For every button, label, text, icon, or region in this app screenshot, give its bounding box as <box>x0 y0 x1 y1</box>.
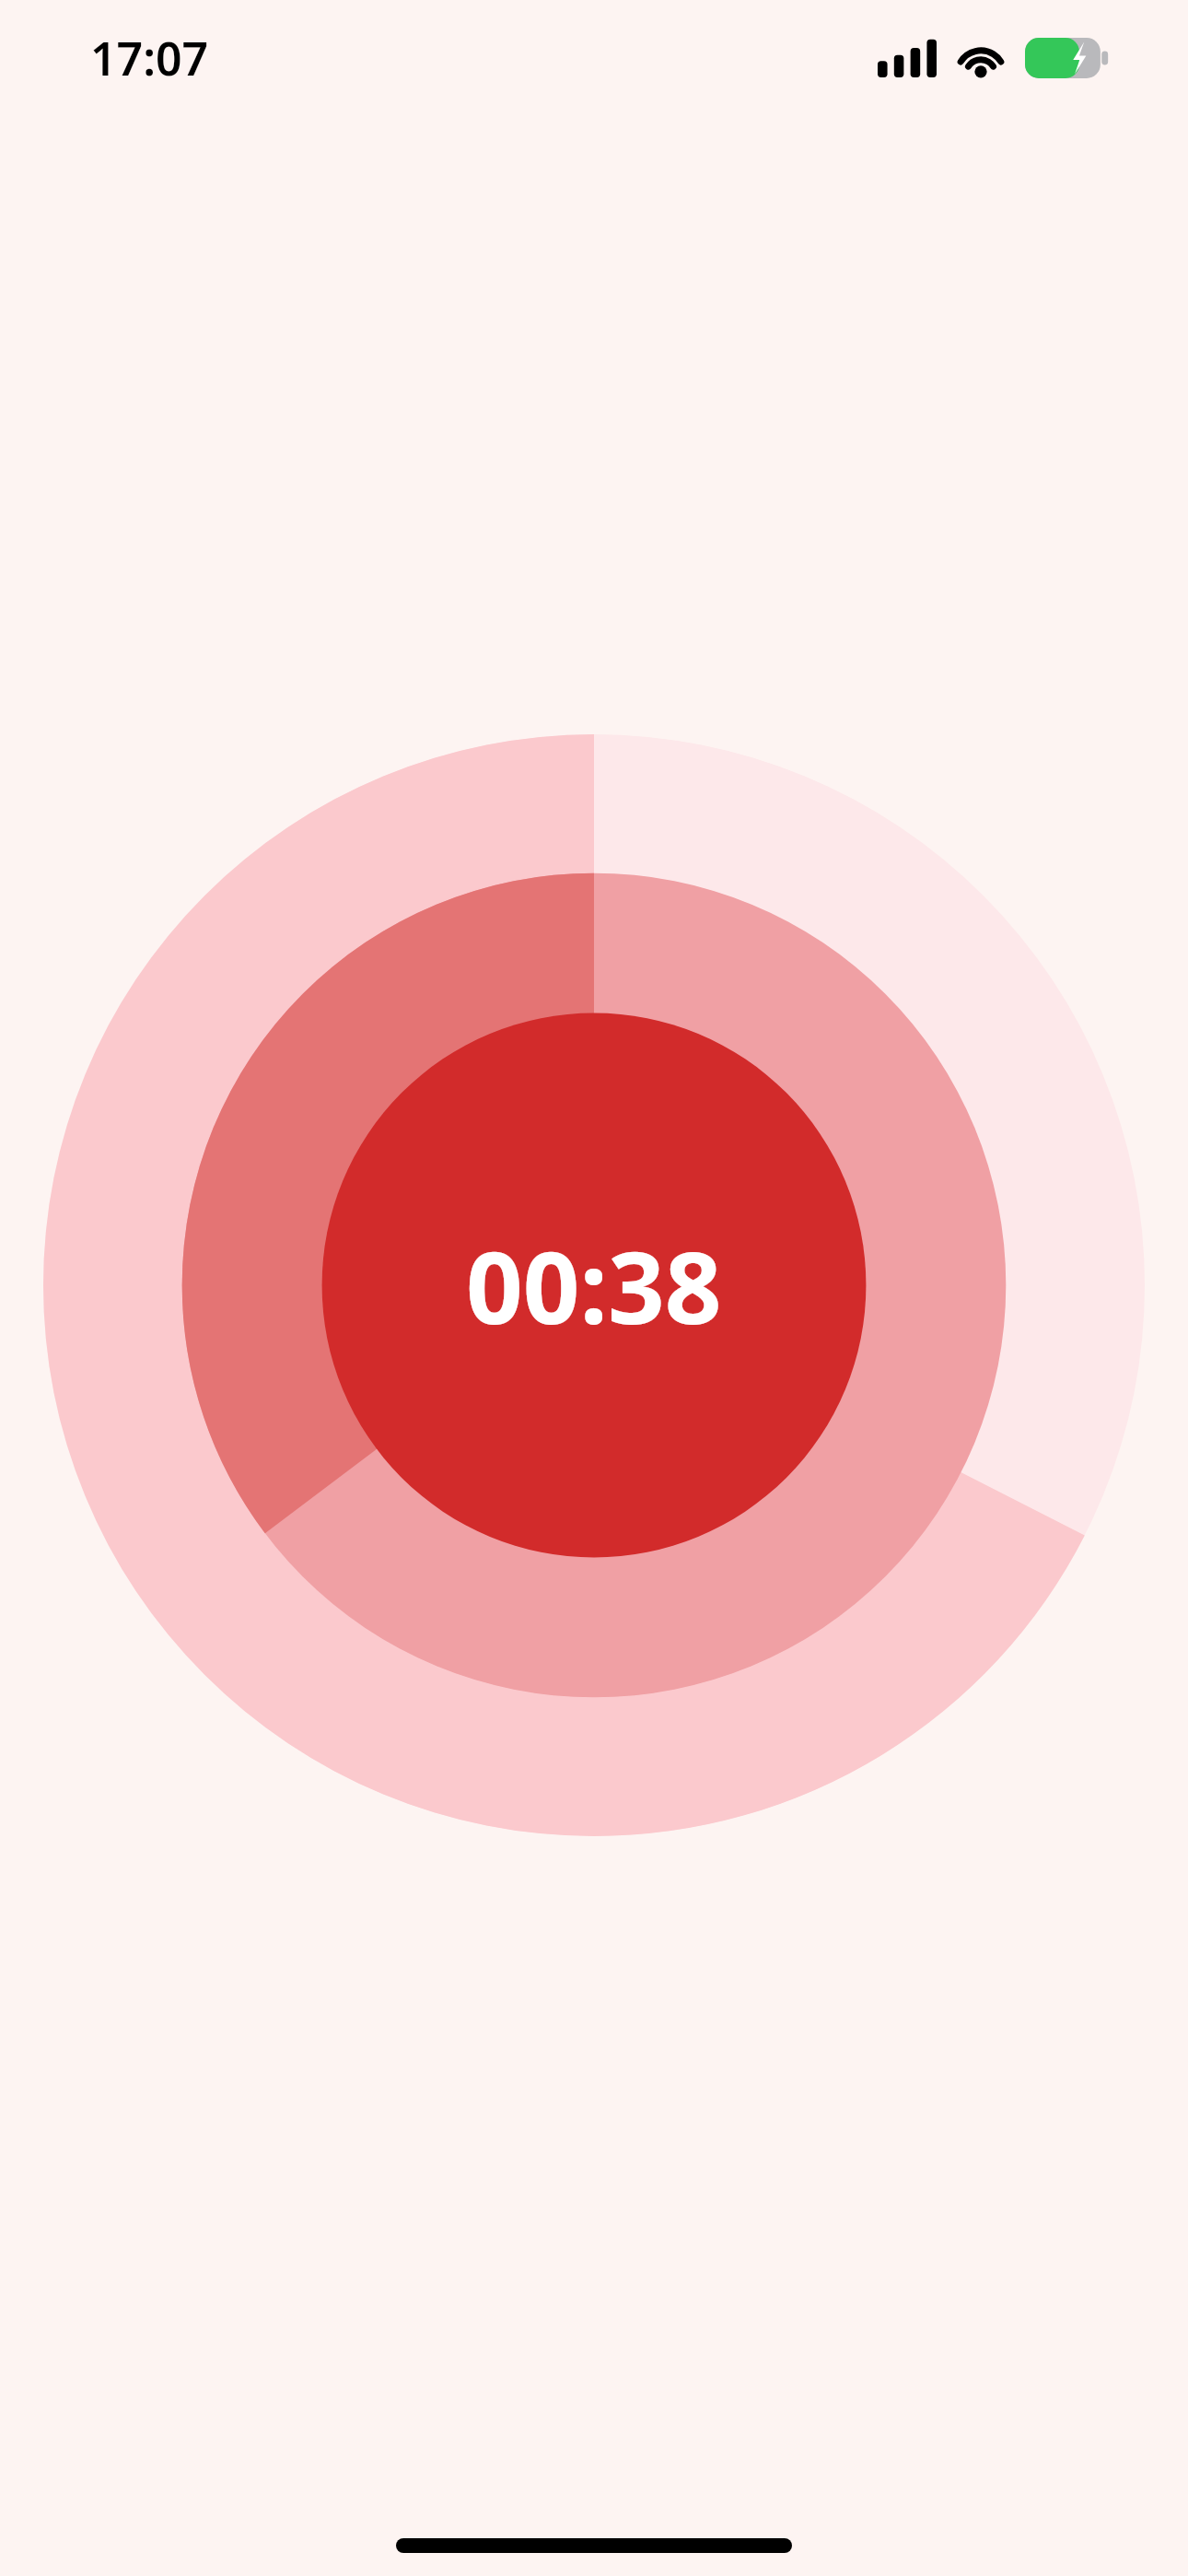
staticText: 00:38 <box>466 1218 722 1353</box>
button[interactable]: Timer 00:38 <box>43 734 1145 1836</box>
staticText: 17:07 <box>90 27 209 89</box>
